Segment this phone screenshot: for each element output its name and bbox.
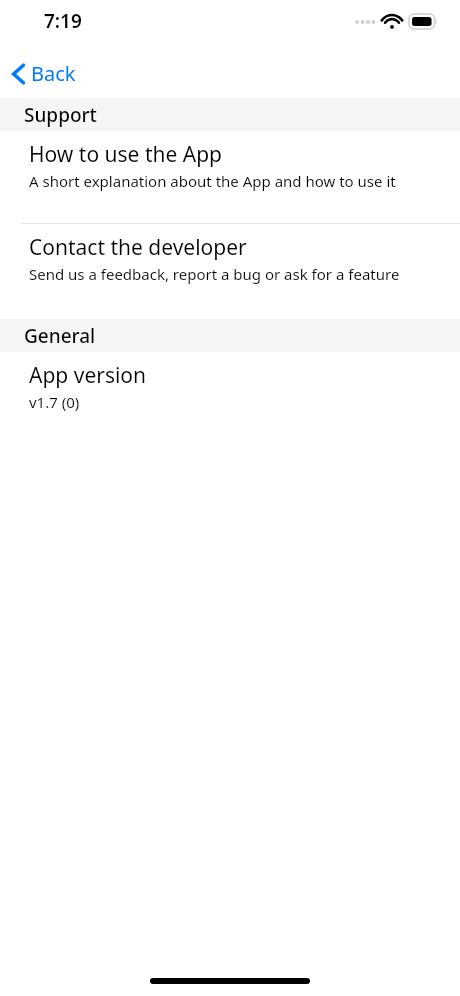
staticText: Back — [31, 60, 76, 87]
staticText: How to use the App — [29, 140, 223, 169]
button[interactable]: Contact the developer — [0, 224, 460, 319]
staticText: General — [24, 323, 96, 349]
staticText: App version — [29, 361, 147, 390]
button[interactable]: How to use the App — [0, 131, 460, 224]
staticText: Contact the developer — [29, 233, 247, 262]
button[interactable]: App version — [0, 352, 460, 412]
staticText: A short explanation about the App and ho… — [29, 171, 396, 191]
staticText: v1.7 (0) — [29, 392, 80, 412]
staticText: 7:19 — [44, 8, 82, 34]
staticText: Send us a feedback, report a bug or ask … — [29, 264, 400, 284]
button[interactable]: Back — [0, 54, 90, 93]
staticText: Support — [24, 102, 97, 128]
